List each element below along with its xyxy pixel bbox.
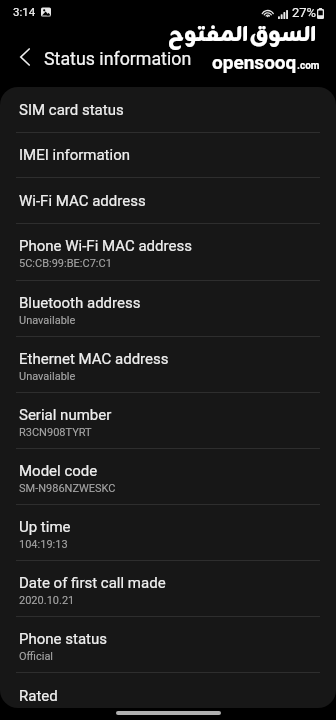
staticText: SIM card status	[19, 101, 124, 119]
button[interactable]: Rated	[0, 673, 336, 708]
staticText: Date of first call made	[19, 574, 166, 592]
staticText: 5C:CB:99:BE:C7:C1	[19, 257, 112, 270]
staticText: Official	[19, 650, 54, 663]
staticText: Unavailable	[19, 370, 76, 383]
staticText: Rated	[19, 687, 58, 705]
button[interactable]: Back	[3, 35, 47, 79]
staticText: Ethernet MAC address	[19, 350, 169, 368]
button[interactable]: Serial number	[0, 393, 336, 448]
staticText: 27%	[292, 5, 317, 20]
button[interactable]: Phone Wi-Fi MAC address	[0, 224, 336, 280]
staticText: Serial number	[19, 406, 112, 424]
button[interactable]: Bluetooth address	[0, 281, 336, 336]
staticText: Model code	[19, 462, 98, 480]
staticText: Phone Wi-Fi MAC address	[19, 237, 192, 255]
staticText: Bluetooth address	[19, 294, 141, 312]
staticText: 2020.10.21	[19, 594, 75, 607]
button[interactable]: IMEI information	[0, 133, 336, 177]
button[interactable]: Wi-Fi MAC address	[0, 178, 336, 223]
staticText: .com	[297, 60, 320, 72]
button[interactable]: Date of first call made	[0, 561, 336, 616]
staticText: opensooq	[212, 51, 297, 73]
button[interactable]: Ethernet MAC address	[0, 337, 336, 392]
staticText: Wi-Fi MAC address	[19, 192, 146, 210]
button[interactable]: Up time	[0, 505, 336, 560]
other: Home	[116, 711, 221, 715]
staticText: 3:14	[13, 5, 36, 18]
staticText: SM-N986NZWESKC	[19, 482, 116, 495]
button[interactable]: Phone status	[0, 617, 336, 672]
staticText: Status information	[44, 48, 192, 69]
staticText: Up time	[19, 518, 71, 536]
staticText: Phone status	[19, 630, 107, 648]
staticText: السوق المفتوح	[168, 18, 317, 54]
staticText: 104:19:13	[19, 538, 68, 551]
staticText: Unavailable	[19, 314, 76, 327]
staticText: R3CN908TYRT	[19, 426, 92, 439]
button[interactable]: SIM card status	[0, 87, 336, 132]
staticText: IMEI information	[19, 146, 130, 164]
button[interactable]: Model code	[0, 449, 336, 504]
